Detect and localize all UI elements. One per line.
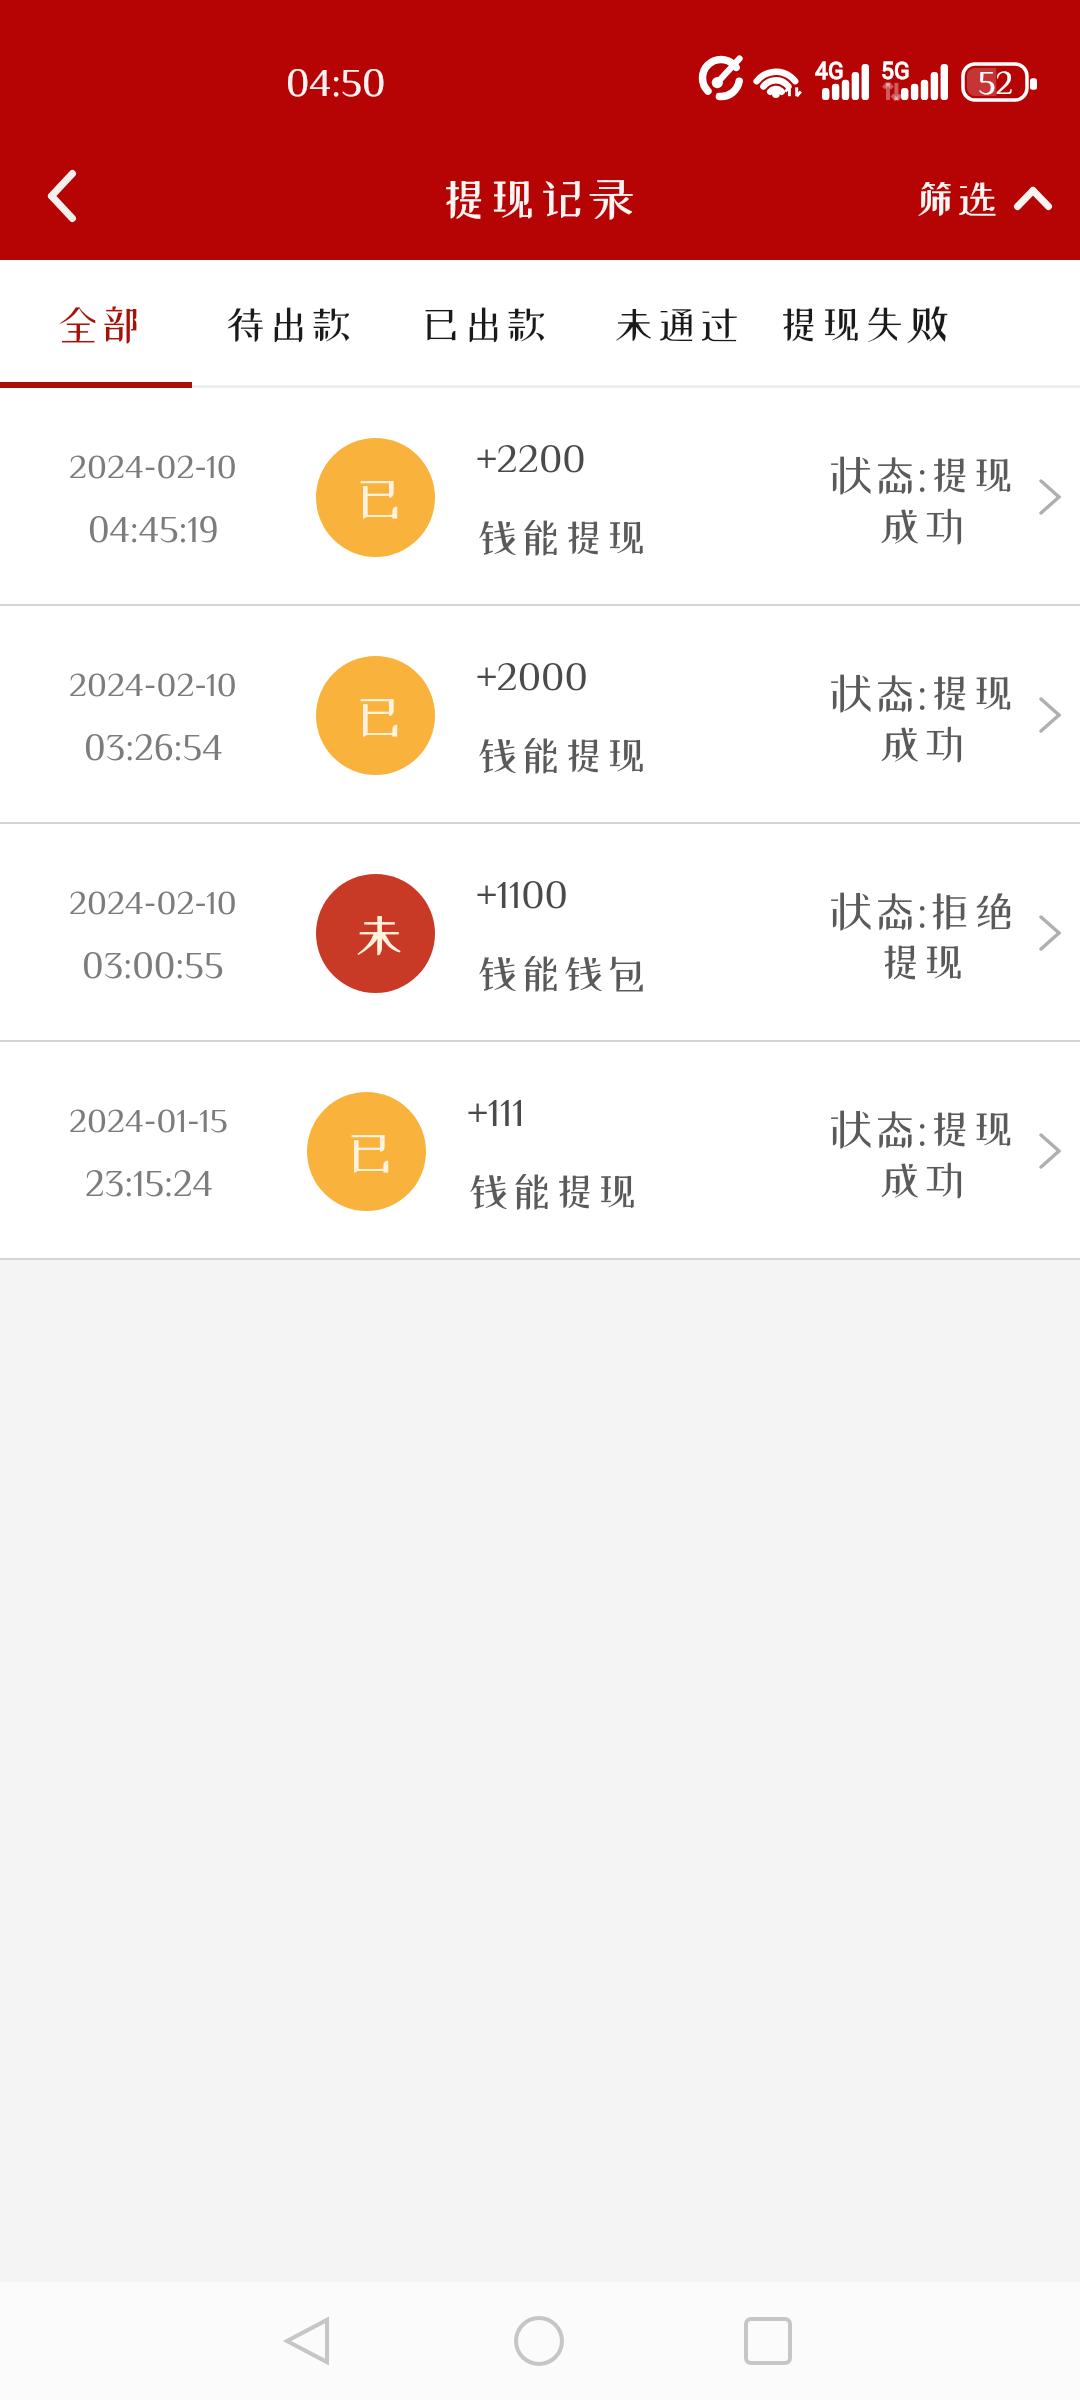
staticText: 成功 — [878, 504, 967, 547]
staticText: 04:50 — [286, 61, 386, 101]
staticText: 已出款 — [419, 303, 549, 345]
staticText: 状态:提现 — [829, 453, 1016, 496]
button[interactable]: Recents — [728, 2301, 808, 2381]
staticText: 2024-02-10 — [69, 448, 237, 482]
staticText: 已 — [353, 691, 406, 742]
button[interactable]: 未通过 — [602, 273, 752, 375]
button[interactable]: 已出款 — [409, 273, 559, 375]
button[interactable]: 2024-02-10 — [0, 388, 1080, 606]
button[interactable]: 全部 — [46, 273, 153, 375]
button[interactable]: 2024-02-10 — [0, 824, 1080, 1042]
button[interactable]: 2024-02-10 — [0, 606, 1080, 824]
button[interactable]: 提现失败 — [767, 273, 960, 375]
staticText: 状态:提现 — [829, 1107, 1016, 1150]
staticText: 04:45:19 — [88, 509, 219, 546]
staticText: 待出款 — [224, 303, 354, 345]
staticText: 钱能钱包 — [476, 952, 649, 994]
staticText: +1100 — [476, 873, 568, 913]
staticText: 全部 — [56, 303, 143, 345]
staticText: +2000 — [476, 655, 588, 695]
button[interactable]: 2024-01-15 — [0, 1042, 1080, 1260]
staticText: 03:26:54 — [84, 727, 223, 764]
staticText: 23:15:24 — [85, 1163, 213, 1200]
staticText: 成功 — [878, 722, 967, 765]
staticText: 提现失败 — [777, 303, 950, 345]
staticText: 钱能提现 — [476, 734, 649, 776]
staticText: 未 — [353, 909, 406, 960]
button[interactable]: 筛选 — [897, 154, 1080, 236]
staticText: 2024-02-10 — [69, 884, 237, 918]
button[interactable]: Home — [499, 2301, 579, 2381]
staticText: +111 — [467, 1091, 525, 1131]
staticText: 成功 — [878, 1158, 967, 1201]
button[interactable]: Back — [267, 2301, 347, 2381]
staticText: 状态:拒绝 — [829, 889, 1016, 932]
staticText: 提现 — [878, 940, 967, 983]
staticText: 已 — [353, 473, 406, 524]
staticText: 钱能提现 — [476, 516, 649, 558]
staticText: 钱能提现 — [467, 1170, 640, 1212]
button[interactable]: Back — [4, 139, 116, 251]
staticText: 状态:提现 — [829, 671, 1016, 714]
button[interactable]: 待出款 — [214, 273, 364, 375]
staticText: 2024-01-15 — [69, 1102, 228, 1136]
staticText: 52 — [978, 65, 1013, 98]
staticText: +2200 — [476, 437, 586, 477]
staticText: 4G — [815, 58, 844, 85]
staticText: 提现记录 — [439, 175, 636, 223]
staticText: 筛选 — [913, 177, 1000, 219]
staticText: 2024-02-10 — [69, 666, 237, 700]
staticText: 未通过 — [612, 303, 742, 345]
staticText: 5G — [881, 58, 910, 85]
staticText: 03:00:55 — [82, 945, 224, 982]
staticText: 已 — [344, 1127, 397, 1178]
